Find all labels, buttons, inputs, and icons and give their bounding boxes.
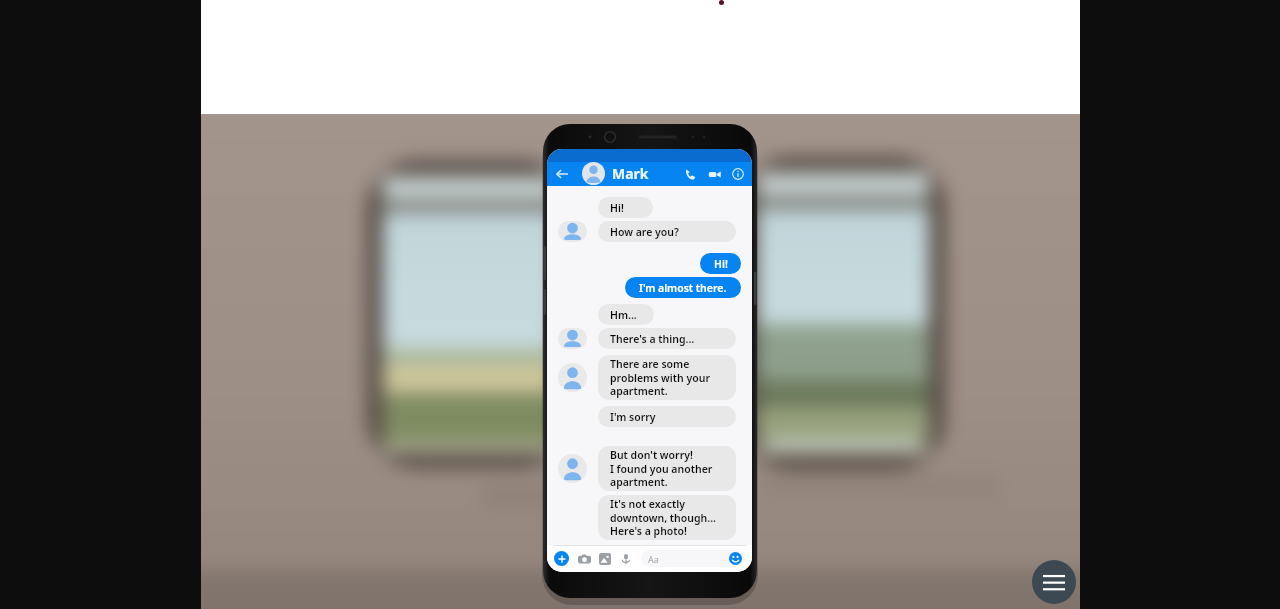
button[interactable]: There's a thing... (598, 328, 736, 349)
button[interactable]: It's not exactly downtown, though... Her… (598, 495, 736, 540)
staticText: Hm... (610, 308, 637, 322)
button[interactable]: Hm... (598, 304, 654, 325)
button[interactable]: Info (730, 166, 746, 182)
staticText: But don't worry! I found you another apa… (610, 448, 713, 489)
button[interactable]: There are some problems with your apartm… (598, 355, 736, 400)
button[interactable]: Call (682, 166, 698, 182)
button[interactable]: But don't worry! I found you another apa… (598, 446, 736, 491)
staticText: Aa (648, 553, 659, 565)
button[interactable]: Video call (706, 166, 722, 182)
button[interactable]: Camera (577, 552, 591, 566)
staticText: I'm sorry (610, 410, 656, 424)
button[interactable]: How are you? (598, 221, 736, 242)
staticText: Hi! (610, 201, 624, 215)
button[interactable]: Gallery (598, 552, 612, 566)
staticText: Hi! (714, 257, 728, 271)
button[interactable]: Emoji (729, 552, 742, 565)
button[interactable]: I'm sorry (598, 406, 736, 427)
staticText: There's a thing... (610, 332, 695, 346)
staticText: How are you? (610, 225, 679, 239)
button[interactable]: I'm almost there. (625, 277, 741, 298)
staticText: There are some problems with your apartm… (610, 357, 710, 398)
button[interactable]: Back (554, 166, 570, 182)
button[interactable]: Voice (619, 552, 633, 566)
staticText: I'm almost there. (639, 281, 727, 295)
button[interactable]: Hi! (700, 253, 741, 274)
staticText: It's not exactly downtown, though... Her… (610, 497, 716, 538)
button[interactable]: Aa (641, 550, 745, 567)
staticText: Mark (612, 164, 649, 183)
button[interactable]: Menu (1032, 560, 1076, 604)
button[interactable]: Hi! (598, 197, 653, 218)
button[interactable]: Add (554, 551, 569, 566)
